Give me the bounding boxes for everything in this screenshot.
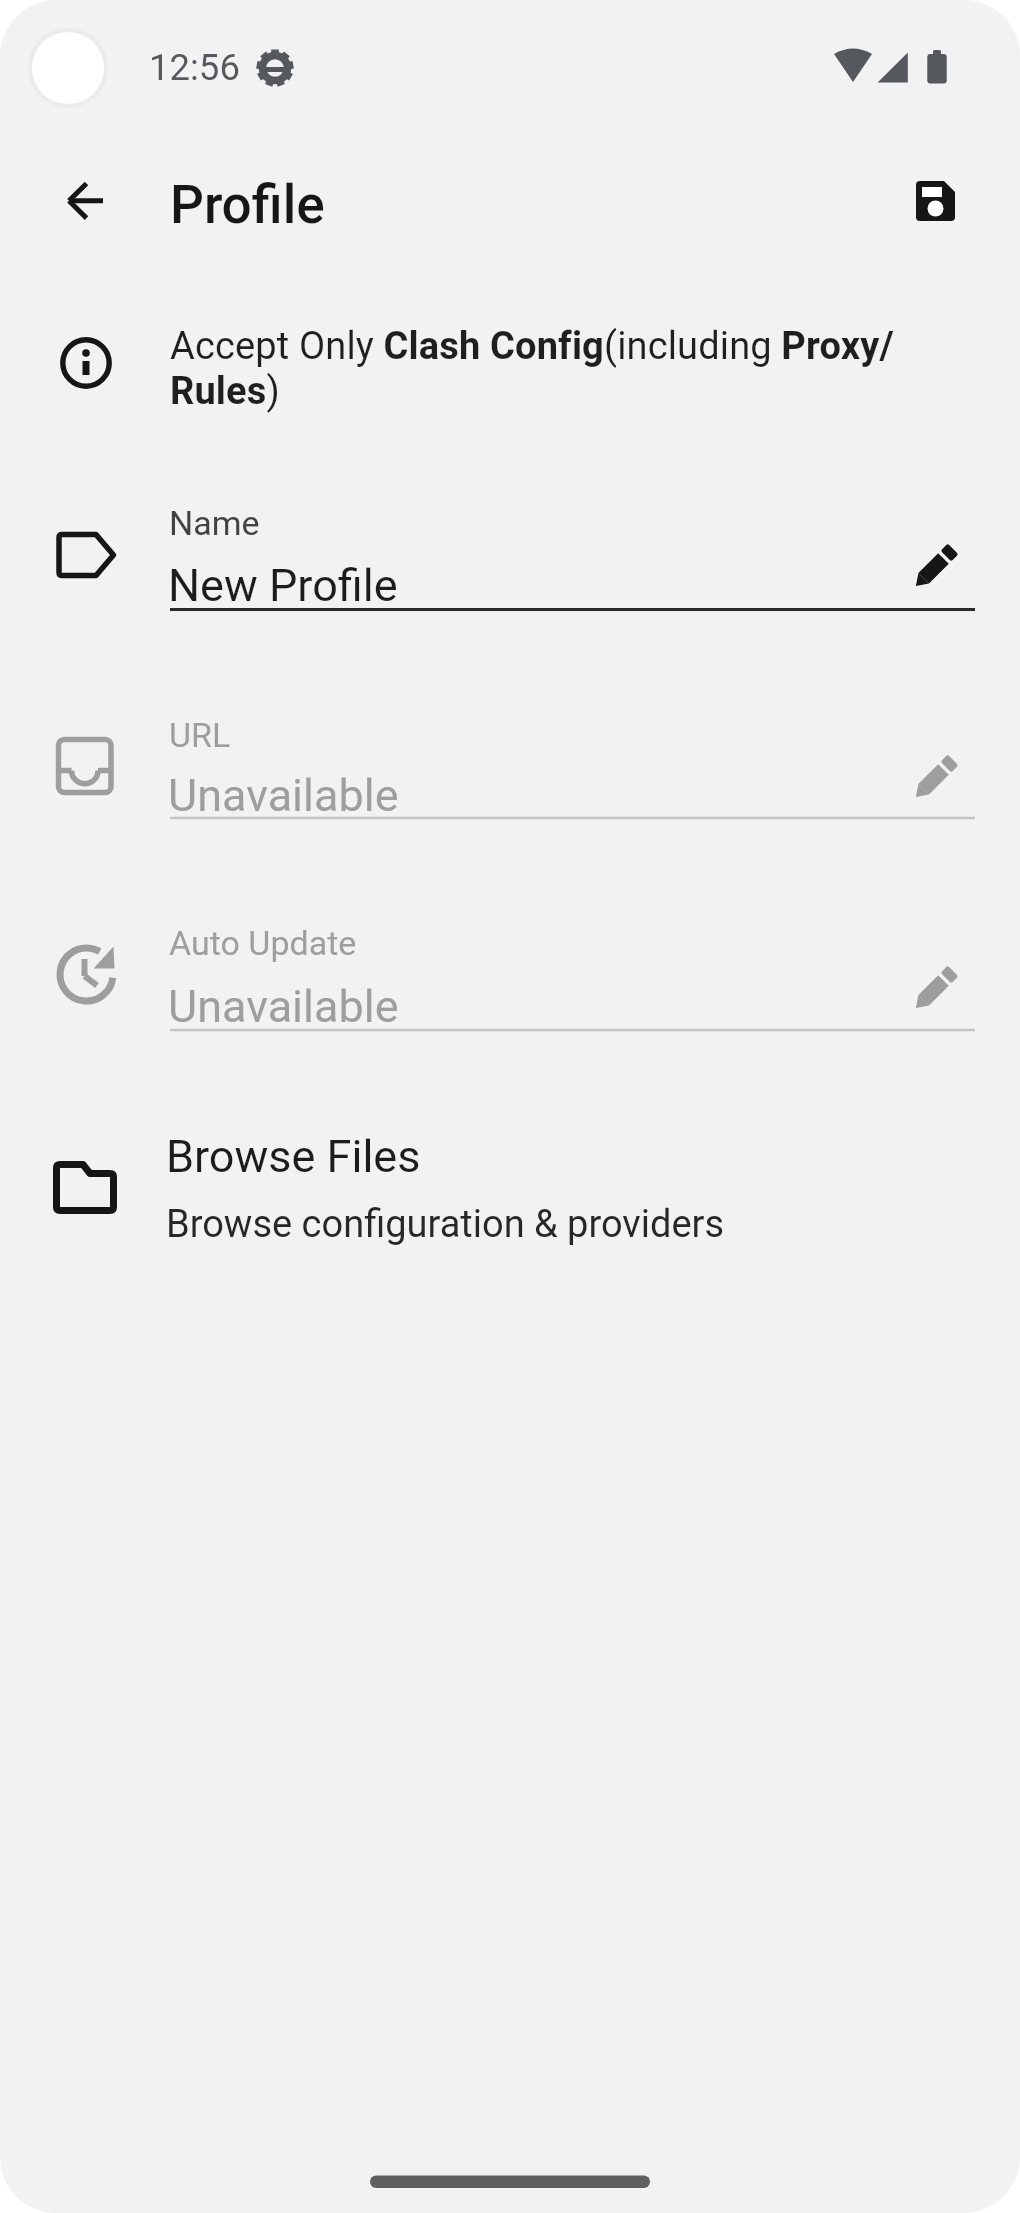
button[interactable] [51,165,123,237]
staticText: Unavailable [168,980,399,1033]
staticText: New Profile [168,559,398,612]
staticText: Browse configuration & providers [166,1202,725,1247]
staticText: Name [169,503,260,543]
button[interactable] [0,1110,1020,1265]
staticText: Auto Update [169,923,357,963]
button[interactable] [0,690,1020,845]
button[interactable] [0,480,1020,635]
staticText: Accept Only Clash Config(including Proxy… [170,324,894,414]
staticText: URL [169,715,231,755]
button[interactable] [0,300,1020,430]
staticText: Profile [170,174,325,236]
staticText: 12:56 [149,46,240,89]
staticText: Unavailable [168,769,399,822]
staticText: Browse Files [166,1130,421,1183]
button[interactable] [0,900,1020,1055]
button[interactable] [899,165,971,237]
